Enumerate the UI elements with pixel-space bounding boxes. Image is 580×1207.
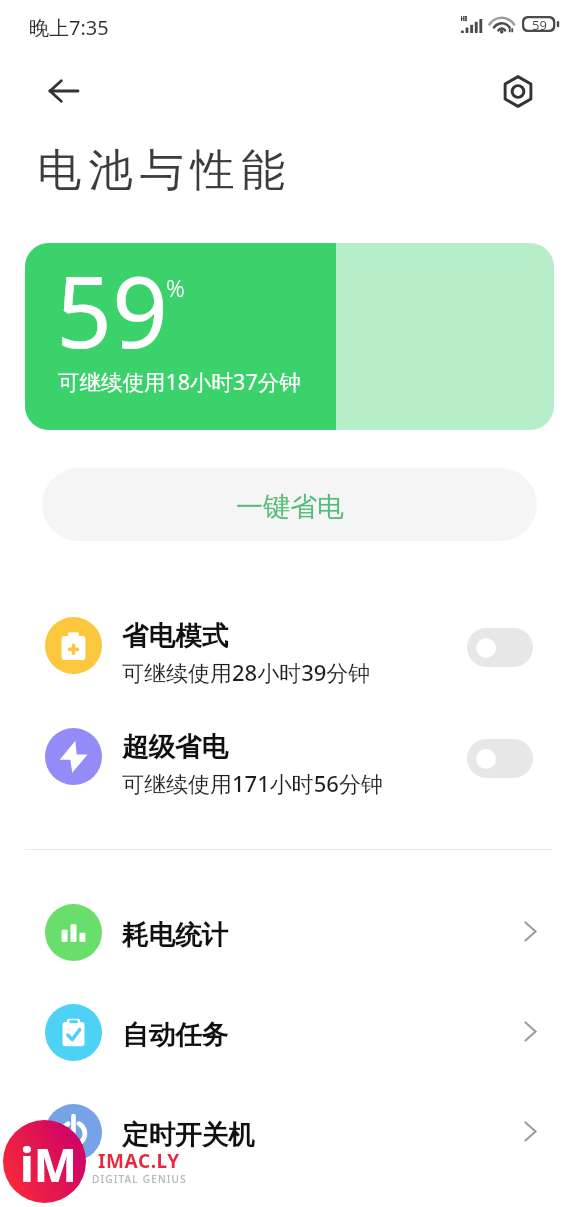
button[interactable]: 省电模式 [0, 609, 580, 699]
button[interactable]: 59 [25, 243, 554, 430]
button[interactable]: Toggle 省电模式 [467, 628, 533, 667]
button[interactable]: 耗电统计 [0, 882, 580, 982]
button[interactable]: Back [33, 68, 93, 114]
staticText: 定时开关机 [122, 1118, 255, 1151]
staticText: 自动任务 [122, 1018, 228, 1051]
staticText: 省电模式 [122, 619, 228, 652]
staticText: iM [20, 1133, 78, 1196]
button[interactable]: 一键省电 [42, 468, 537, 541]
staticText: 超级省电 [122, 730, 228, 763]
staticText: 耗电统计 [122, 918, 228, 951]
staticText: 可继续使用18小时37分钟 [58, 367, 301, 396]
staticText: 可继续使用171小时56分钟 [122, 768, 383, 798]
button[interactable]: 定时开关机 [0, 1082, 580, 1182]
staticText: 电池与性能 [34, 143, 289, 198]
button[interactable]: 自动任务 [0, 982, 580, 1082]
button[interactable]: Settings [495, 68, 541, 114]
staticText: % [166, 272, 185, 303]
button[interactable]: 超级省电 [0, 720, 580, 810]
staticText: 59 [532, 16, 547, 32]
staticText: IMAC.LY [98, 1148, 180, 1174]
staticText: DIGITAL GENIUS [92, 1172, 187, 1186]
button[interactable]: Toggle 超级省电 [467, 739, 533, 778]
staticText: 59 [56, 243, 169, 376]
staticText: 可继续使用28小时39分钟 [122, 657, 371, 687]
staticText: 一键省电 [236, 490, 344, 524]
staticText: 晚上7:35 [29, 14, 109, 41]
